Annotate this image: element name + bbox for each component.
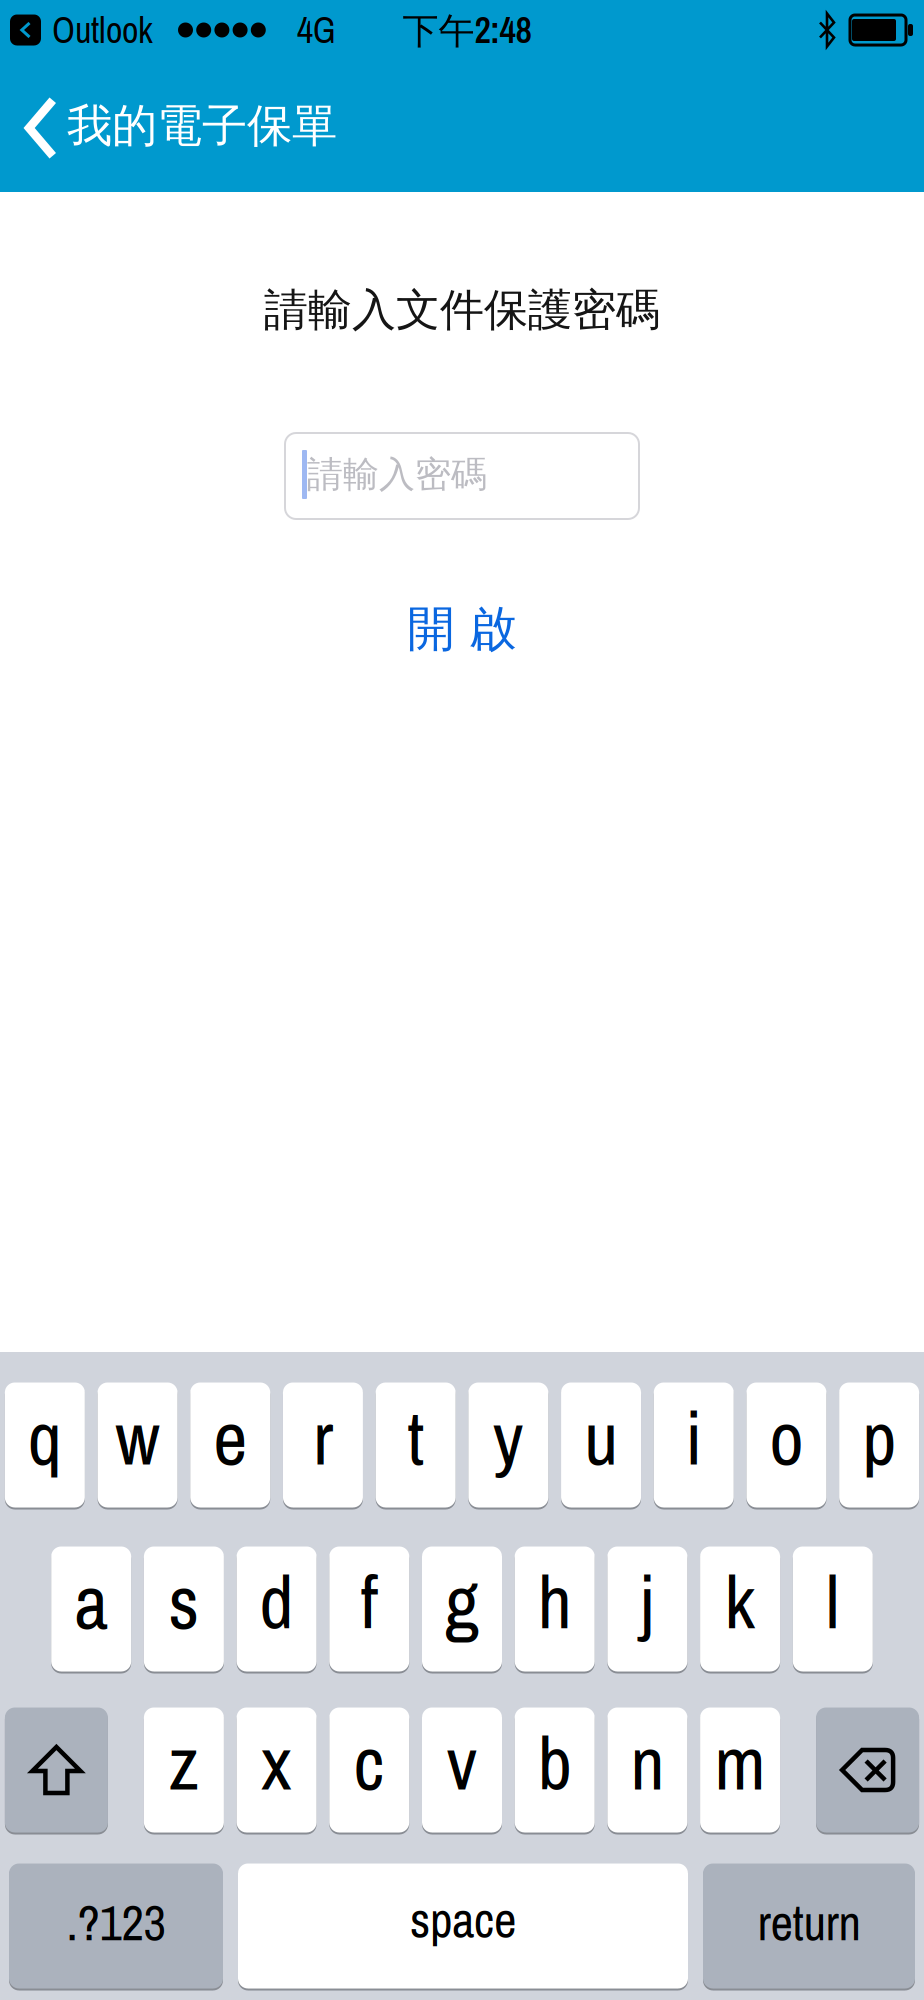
button[interactable]: n [607, 1705, 687, 1834]
staticText: n [630, 1712, 664, 1813]
staticText: m [715, 1712, 766, 1813]
button[interactable]: u [561, 1380, 641, 1509]
button[interactable]: b [515, 1705, 595, 1834]
button[interactable]: z [144, 1705, 224, 1834]
button[interactable]: m [700, 1705, 780, 1834]
staticText: 我的電子保單 [67, 98, 337, 154]
staticText: e [213, 1387, 247, 1488]
button[interactable]: Shift [5, 1705, 108, 1834]
button[interactable]: 開 啟 [373, 598, 551, 660]
staticText: w [116, 1387, 160, 1488]
staticText: 下午2:48 [402, 6, 531, 54]
staticText: h [538, 1551, 572, 1652]
button[interactable]: space [238, 1861, 688, 1990]
staticText: 請輸入文件保護密碼 [264, 283, 660, 337]
button[interactable]: j [607, 1544, 687, 1673]
button[interactable]: o [746, 1380, 826, 1509]
button[interactable]: l [793, 1544, 873, 1673]
staticText: y [493, 1387, 524, 1488]
staticText: p [862, 1387, 896, 1488]
staticText: q [28, 1387, 62, 1488]
staticText: v [446, 1712, 477, 1813]
staticText: x [261, 1712, 292, 1813]
button[interactable]: a [51, 1544, 131, 1673]
staticText: d [260, 1551, 294, 1652]
button[interactable]: y [468, 1380, 548, 1509]
button[interactable]: x [237, 1705, 317, 1834]
staticText: .?123 [66, 1889, 165, 1956]
button[interactable]: t [376, 1380, 456, 1509]
staticText: return [757, 1889, 860, 1956]
button[interactable]: return [703, 1861, 915, 1990]
button[interactable]: v [422, 1705, 502, 1834]
button[interactable]: i [654, 1380, 734, 1509]
button[interactable]: w [98, 1380, 178, 1509]
button[interactable]: k [700, 1544, 780, 1673]
button[interactable]: e [190, 1380, 270, 1509]
button[interactable]: Delete [816, 1705, 919, 1834]
staticText: s [168, 1551, 199, 1652]
staticText: t [407, 1387, 424, 1488]
staticText: 4G [297, 6, 336, 54]
staticText: Outlook [52, 6, 153, 54]
button[interactable]: g [422, 1544, 502, 1673]
staticText: b [538, 1712, 572, 1813]
button[interactable]: r [283, 1380, 363, 1509]
button[interactable]: c [329, 1705, 409, 1834]
staticText: l [826, 1551, 840, 1652]
staticText: c [354, 1712, 385, 1813]
staticText: f [361, 1551, 378, 1652]
staticText: j [640, 1551, 654, 1652]
button[interactable]: 我的電子保單 [0, 60, 355, 192]
staticText: k [725, 1551, 756, 1652]
button[interactable]: p [839, 1380, 919, 1509]
staticText: a [74, 1551, 108, 1652]
button[interactable]: d [237, 1544, 317, 1673]
button[interactable]: h [515, 1544, 595, 1673]
staticText: g [445, 1551, 479, 1652]
button[interactable]: s [144, 1544, 224, 1673]
staticText: i [685, 1387, 702, 1488]
staticText: z [168, 1712, 199, 1813]
staticText: o [769, 1387, 803, 1488]
staticText: 開 啟 [407, 599, 517, 658]
button[interactable]: .?123 [9, 1861, 223, 1990]
button[interactable]: q [5, 1380, 85, 1509]
button[interactable]: f [329, 1544, 409, 1673]
staticText: r [313, 1387, 333, 1488]
staticText: u [584, 1387, 618, 1488]
staticText: 請輸入密碼 [307, 452, 487, 497]
staticText: space [410, 1886, 516, 1953]
